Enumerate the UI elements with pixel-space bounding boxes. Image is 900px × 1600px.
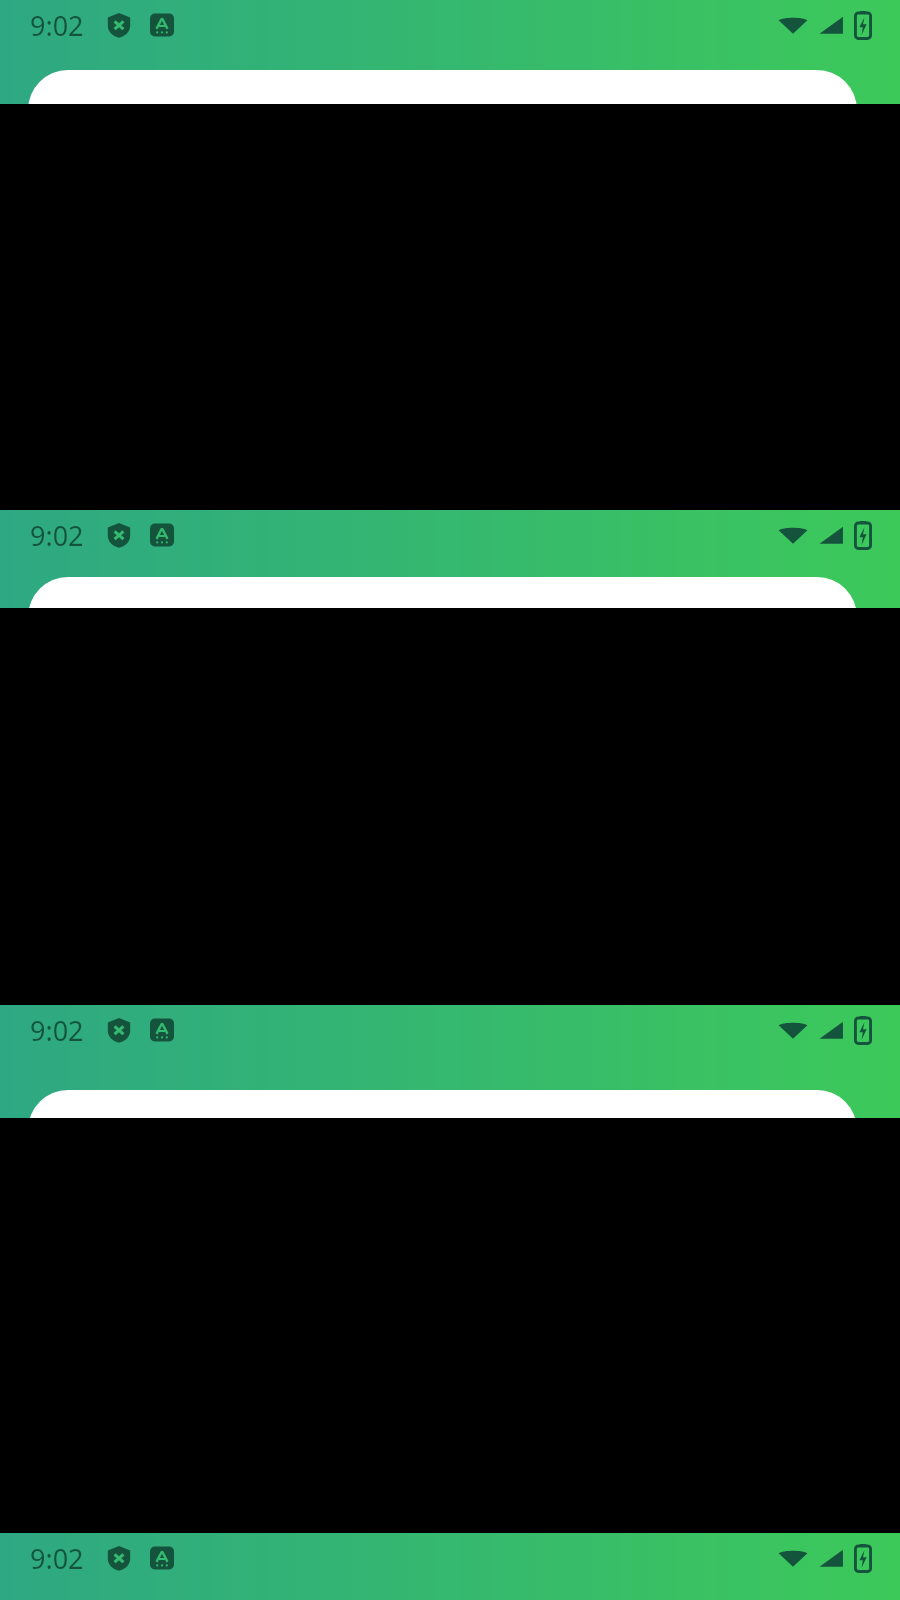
other: Battery charging xyxy=(854,11,872,39)
other: Battery charging xyxy=(854,1544,872,1572)
button[interactable]: Accessibility xyxy=(150,1546,174,1570)
button[interactable]: Protection disabled xyxy=(106,1545,132,1571)
button[interactable]: Dashboard Highlights xyxy=(28,1090,857,1203)
button[interactable]: Accessibility xyxy=(150,1018,174,1042)
other: Cellular signal xyxy=(818,523,844,547)
button[interactable]: Dashboard Highlights xyxy=(28,70,857,174)
other: Cellular signal xyxy=(818,1018,844,1042)
other: Battery charging xyxy=(854,521,872,549)
button[interactable]: Accessibility xyxy=(150,13,174,37)
staticText: 9:02 xyxy=(30,1540,84,1577)
other: Cellular signal xyxy=(818,13,844,37)
button[interactable]: Protection disabled xyxy=(106,1017,132,1043)
staticText: 9:02 xyxy=(30,7,84,44)
other: Battery charging xyxy=(854,1016,872,1044)
button[interactable]: Dashboard Highlights xyxy=(28,577,857,675)
staticText: 9:02 xyxy=(30,1012,84,1049)
other: Wi-Fi xyxy=(778,523,808,547)
staticText: Dashboard Highlights xyxy=(28,607,857,642)
staticText: 9:02 xyxy=(30,517,84,554)
button[interactable]: Protection disabled xyxy=(106,522,132,548)
button[interactable]: Protection disabled xyxy=(106,12,132,38)
other: Wi-Fi xyxy=(778,13,808,37)
other: Cellular signal xyxy=(818,1546,844,1570)
button[interactable]: Accessibility xyxy=(150,523,174,547)
other: Wi-Fi xyxy=(778,1018,808,1042)
other: Wi-Fi xyxy=(778,1546,808,1570)
staticText: Dashboard Highlights xyxy=(28,100,857,135)
